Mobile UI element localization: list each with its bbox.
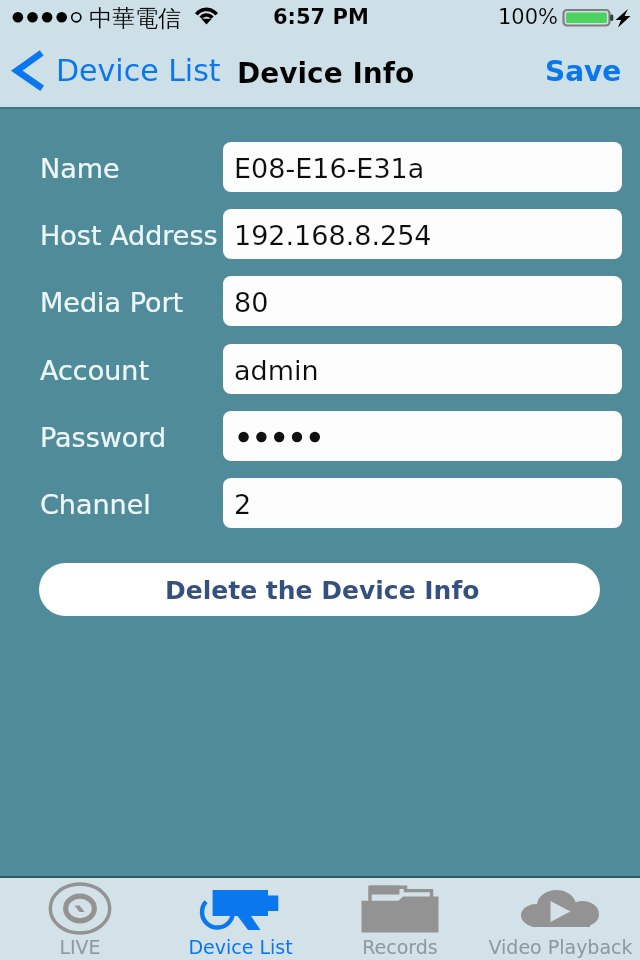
staticText: Media Port [40,287,184,318]
staticText: 80 [234,287,269,318]
button[interactable]: Records [320,878,480,960]
button[interactable]: Video playback [480,878,640,960]
staticText: Records [362,936,438,958]
button[interactable]: 2 [223,478,622,528]
button[interactable]: Device List [8,44,230,100]
button[interactable]: Delete the Device Info [39,563,600,616]
button[interactable]: 192.168.8.254 [223,209,622,259]
button[interactable]: Device list [160,878,320,960]
staticText: Account [40,355,150,386]
staticText: Device List [188,936,293,958]
staticText: 100% [498,5,559,29]
staticText: Password [40,422,167,453]
staticText: Delete the Device Info [165,576,480,605]
staticText: Save [545,55,622,88]
button[interactable] [223,411,622,461]
staticText: LIVE [59,936,101,958]
staticText: Name [40,153,120,184]
button[interactable]: Save [527,42,640,100]
staticText: 192.168.8.254 [234,220,432,251]
button[interactable]: admin [223,344,622,394]
button[interactable]: E08-E16-E31a [223,142,622,192]
staticText: 中華電信 [89,4,181,33]
staticText: admin [234,355,319,386]
staticText: Channel [40,489,151,520]
staticText: Video Playback [488,936,633,958]
staticText: Host Address [40,220,218,251]
button[interactable]: Live view [0,878,160,960]
staticText: 2 [234,489,252,520]
staticText: Device List [56,53,221,88]
staticText: 6:57 PM [273,5,369,29]
button[interactable]: 80 [223,276,622,326]
staticText: Device Info [237,57,415,90]
staticText: E08-E16-E31a [234,153,425,184]
